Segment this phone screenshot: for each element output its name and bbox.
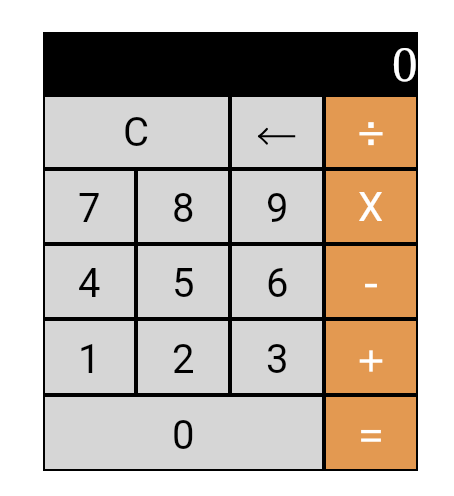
button[interactable]: 3 [232,321,322,393]
staticText: 4 [78,260,101,307]
staticText: 0 [392,36,418,92]
button[interactable] [326,246,416,317]
staticText: 5 [172,260,195,307]
button[interactable]: 7 [45,171,134,242]
button[interactable]: 8 [138,171,228,242]
staticText: 7 [78,185,101,232]
staticText: 8 [172,185,195,232]
staticText: 1 [78,336,101,383]
button[interactable]: X [326,171,416,242]
staticText: 3 [266,336,289,383]
staticText: C [123,109,150,156]
button[interactable]: 2 [138,321,228,393]
button[interactable]: 1 [45,321,134,393]
button[interactable]: 6 [232,246,322,317]
button[interactable]: 5 [138,246,228,317]
staticText: 9 [266,185,289,232]
button[interactable] [326,97,416,167]
button[interactable] [326,321,416,393]
staticText: 0 [172,412,195,459]
staticText: 2 [172,336,195,383]
button[interactable] [232,97,322,167]
button[interactable]: 0 [45,397,322,469]
staticText: 6 [266,260,289,307]
button[interactable]: 9 [232,171,322,242]
button[interactable]: 4 [45,246,134,317]
staticText: X [358,184,384,231]
button[interactable] [326,397,416,469]
button[interactable]: C [45,97,228,167]
